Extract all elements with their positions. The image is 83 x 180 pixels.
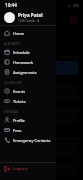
staticText: Priya Patel [18,12,43,18]
staticText: PERSONAL [4,110,19,114]
staticText: 10th Grade · A [18,19,40,23]
button[interactable]: DOC [4,67,52,77]
staticText: Home [13,31,25,36]
button[interactable]: HOME [4,28,52,38]
staticText: Profile [13,118,25,123]
button[interactable]: CARD [4,125,52,135]
other: CALENDAR [4,49,10,55]
staticText: Homework [13,60,34,65]
staticText: Logout [13,166,28,172]
other: HOME [4,30,10,36]
button[interactable]: PERSON [4,115,52,125]
button[interactable]: BOOK [4,57,52,67]
button[interactable]: PHONE [4,135,52,145]
other: BOOK [4,59,10,65]
other: PHONE [4,137,10,143]
other: DOC [4,69,10,75]
staticText: Tickets [13,99,26,104]
other: TICKET [4,98,10,104]
button[interactable]: LOGOUT [4,163,52,175]
button[interactable]: CALENDAR [4,47,52,57]
staticText: Schedule [13,50,30,55]
staticText: 10:44 [5,2,17,8]
other: STAR [4,88,10,94]
staticText: Assignments [13,70,37,75]
other: LOGOUT [4,166,10,172]
other: CARD [4,127,10,133]
staticText: ACADEMICS [4,42,21,46]
other: PERSON [4,117,10,123]
staticText: Fees [13,128,22,133]
staticText: Events [13,89,26,94]
button[interactable]: Priya Patel [4,9,52,25]
button[interactable]: STAR [4,86,52,96]
staticText: Emergency Contacts [13,138,51,143]
button[interactable]: TICKET [4,96,52,106]
staticText: SCHOOL LIFE [4,81,23,85]
